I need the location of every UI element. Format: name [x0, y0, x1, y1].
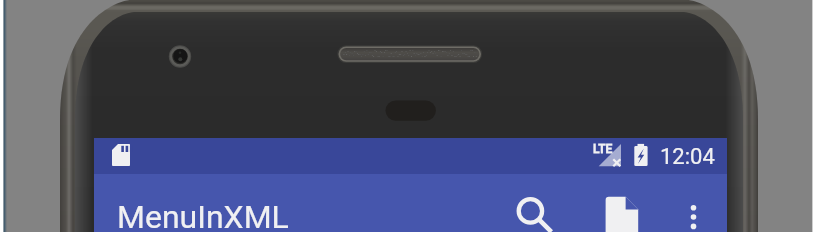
staticText: MenuInXML — [117, 198, 289, 232]
button[interactable]: More options — [664, 182, 712, 232]
button[interactable]: Document — [594, 182, 656, 232]
staticText: LTE — [593, 142, 613, 156]
button[interactable]: Search — [500, 182, 562, 232]
staticText: 12:04 — [660, 144, 715, 170]
